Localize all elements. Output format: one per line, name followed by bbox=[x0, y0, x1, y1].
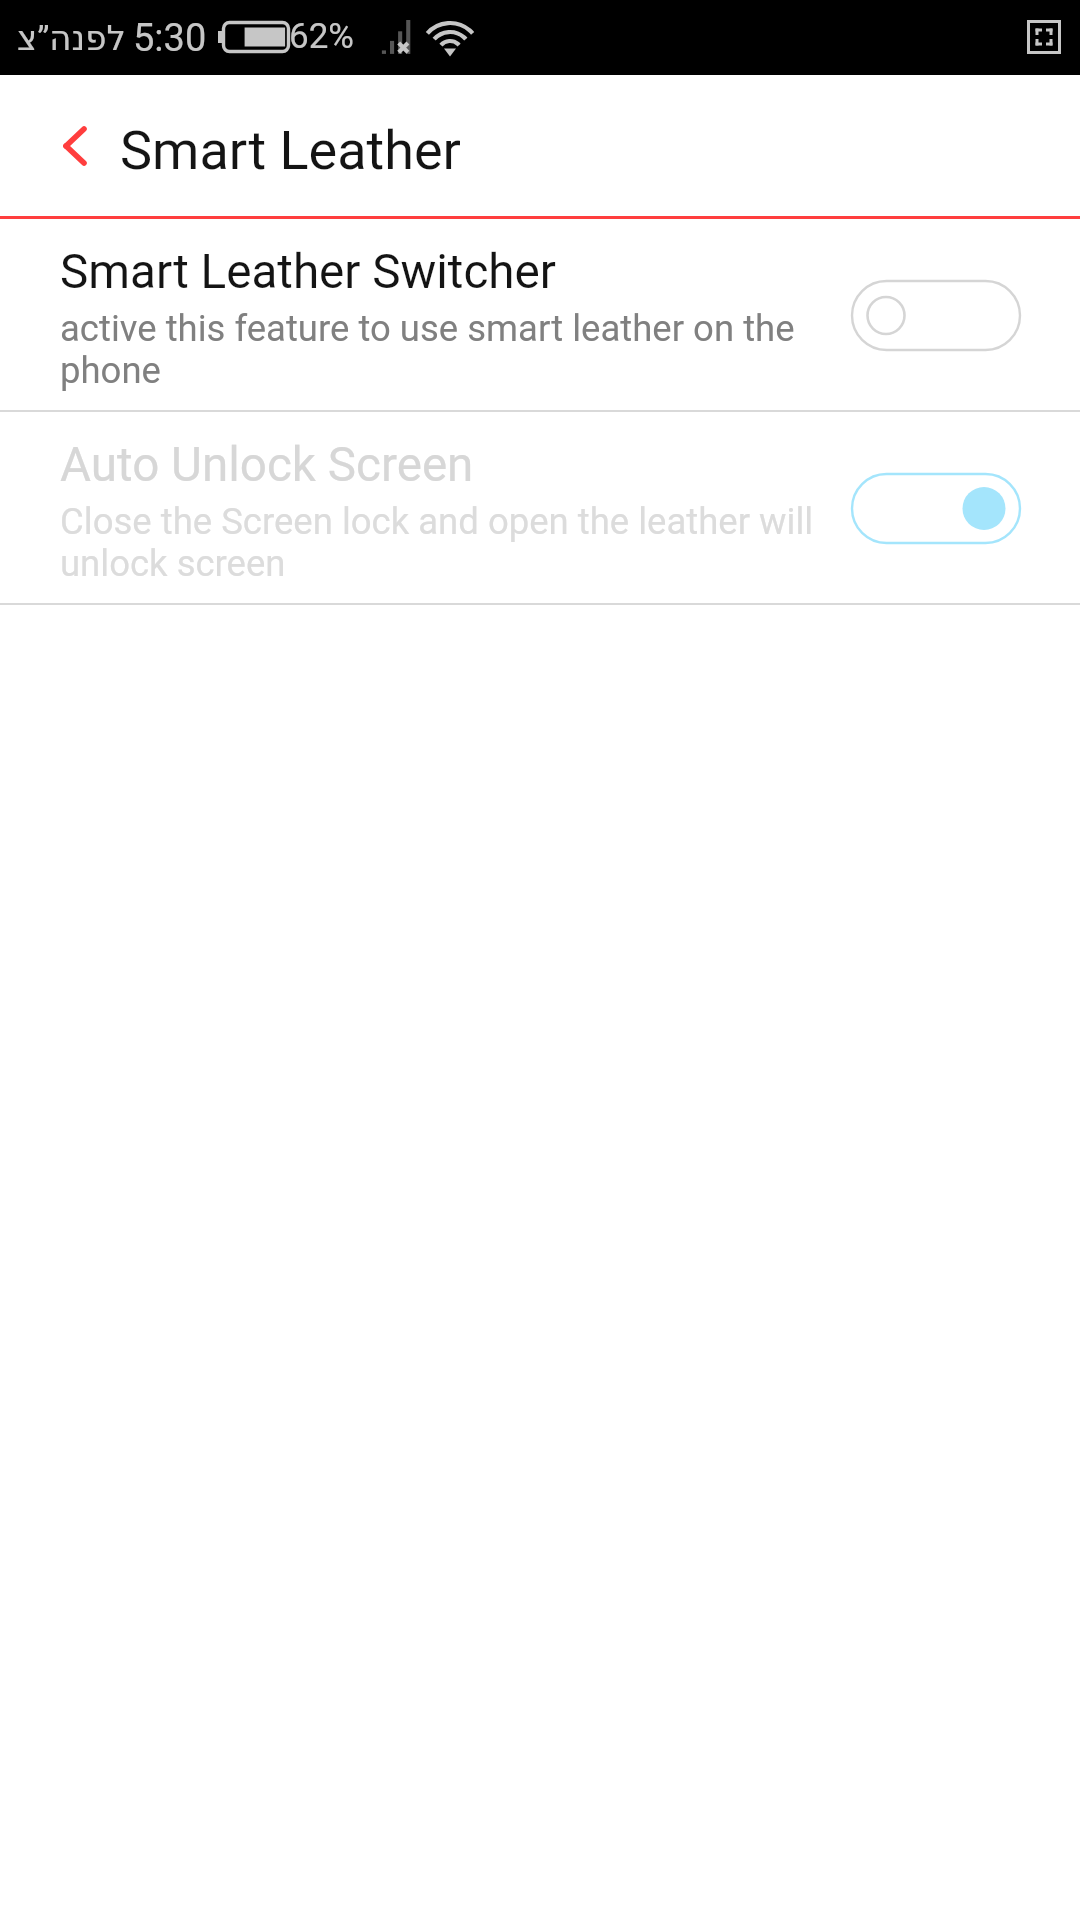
staticText: active this feature to use smart leather… bbox=[60, 307, 795, 392]
staticText: לפנה”צ bbox=[17, 18, 126, 58]
button[interactable]: Capture screenshot bbox=[1027, 20, 1061, 54]
button[interactable]: Back bbox=[0, 75, 118, 216]
staticText: Smart Leather bbox=[120, 119, 461, 182]
staticText: Close the Screen lock and open the leath… bbox=[60, 500, 814, 585]
staticText: Smart Leather Switcher bbox=[60, 244, 556, 300]
button[interactable]: Smart Leather Switcher bbox=[0, 219, 1080, 410]
button[interactable]: Smart leather switcher, off bbox=[848, 275, 1024, 355]
staticText: 62% bbox=[289, 16, 354, 57]
staticText: Auto Unlock Screen bbox=[60, 437, 474, 493]
button[interactable]: Auto Unlock Screen bbox=[0, 412, 1080, 603]
staticText: 5:30 bbox=[133, 16, 207, 61]
button[interactable]: Auto unlock screen, on bbox=[848, 468, 1024, 548]
